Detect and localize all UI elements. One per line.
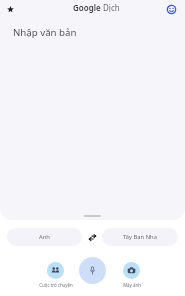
button[interactable]: Google	[73, 2, 120, 13]
button[interactable]: Microphone	[79, 257, 106, 284]
button[interactable]: Cuộc trò chuyện	[33, 257, 78, 288]
button[interactable]: Máy ảnh	[109, 257, 154, 288]
button[interactable]: Anh	[7, 228, 82, 246]
button[interactable]: Account	[162, 0, 181, 19]
staticText: Dịch	[103, 2, 120, 13]
staticText: Máy ảnh	[123, 282, 141, 288]
button[interactable]: Tây Ban Nha	[102, 228, 178, 246]
staticText: Cuộc trò chuyện	[39, 282, 73, 288]
staticText: Tây Ban Nha	[123, 233, 157, 241]
staticText: Anh	[39, 233, 50, 241]
button[interactable]: Saved	[1, 0, 20, 19]
staticText: Google	[73, 2, 101, 13]
button[interactable]: Swap languages	[82, 228, 102, 246]
button[interactable]: Nhập văn bản	[13, 26, 77, 39]
